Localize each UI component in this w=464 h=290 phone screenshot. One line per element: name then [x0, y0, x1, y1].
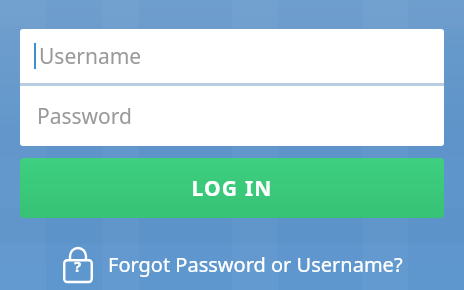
staticText: Password	[37, 102, 132, 131]
button[interactable]: Password	[20, 86, 444, 146]
staticText: Forgot Password or Username?	[108, 251, 403, 278]
staticText: Username	[39, 42, 142, 71]
button[interactable]: Username	[20, 29, 444, 83]
button[interactable]: LOG IN	[20, 158, 444, 218]
button[interactable]: Forgot password lock	[20, 240, 444, 288]
staticText: LOG IN	[191, 174, 273, 203]
other: Forgot password lock	[62, 245, 94, 283]
staticText: ?	[74, 256, 82, 276]
